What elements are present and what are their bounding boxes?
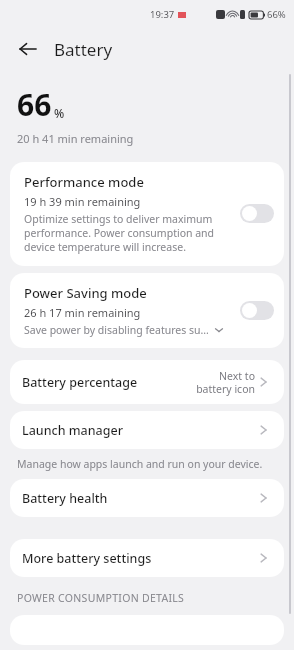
staticText: % (54, 105, 65, 121)
staticText: Next to battery icon (196, 369, 255, 396)
staticText: POWER CONSUMPTION DETAILS (17, 591, 185, 605)
button[interactable]: More battery settings (10, 539, 284, 577)
staticText: Optimize settings to deliver maximum per… (24, 212, 232, 254)
staticText: 19 h 39 min remaining (24, 194, 141, 209)
staticText: Power Saving mode (24, 284, 147, 302)
staticText: Launch manager (22, 422, 123, 439)
button[interactable]: Battery health (10, 479, 284, 517)
staticText: Manage how apps launch and run on your d… (17, 457, 263, 471)
staticText: Battery health (22, 490, 108, 507)
button[interactable]: Performance mode (10, 162, 284, 266)
staticText: 66% (267, 8, 286, 21)
staticText: More battery settings (22, 550, 152, 567)
staticText: 26 h 17 min remaining (24, 305, 141, 320)
button[interactable]: Back (16, 37, 40, 61)
staticText: Battery (54, 38, 113, 61)
button[interactable] (240, 204, 274, 223)
button[interactable]: Power Saving mode (10, 273, 284, 348)
button[interactable]: Battery percentage (10, 360, 284, 404)
staticText: Battery percentage (22, 374, 138, 391)
staticText: 19:37 (150, 8, 175, 21)
button[interactable] (240, 301, 274, 320)
button[interactable]: Launch manager (10, 411, 284, 449)
staticText: 66 (17, 84, 52, 125)
staticText: Save power by disabling features su... (24, 323, 209, 337)
staticText: 20 h 41 min remaining (17, 131, 134, 146)
staticText: Performance mode (24, 173, 144, 191)
